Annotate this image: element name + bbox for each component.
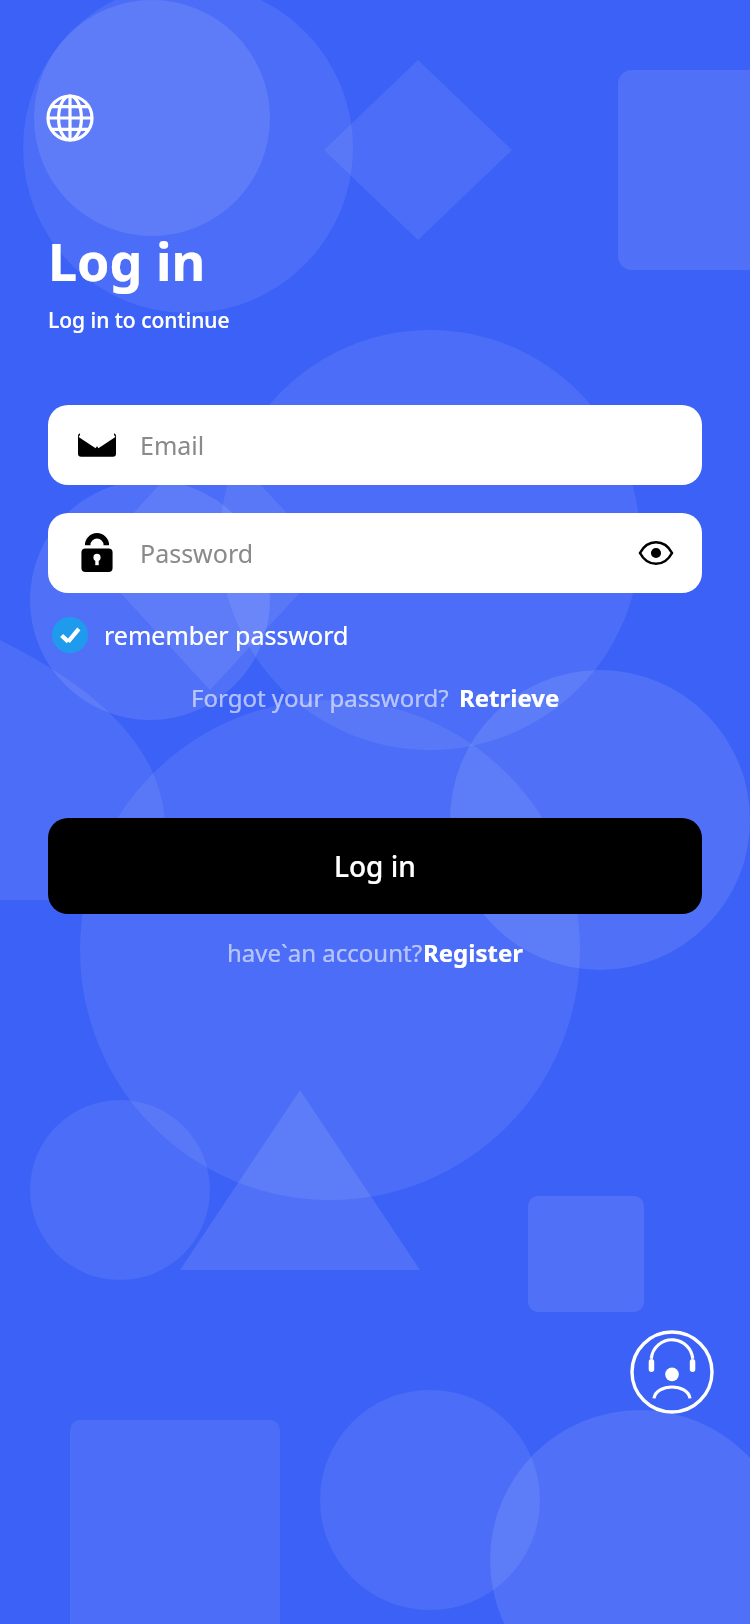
button[interactable]: Retrieve [459, 681, 560, 714]
staticText: Register [423, 936, 523, 969]
button[interactable]: Email [48, 405, 702, 485]
button[interactable]: Password [48, 513, 702, 593]
staticText: Email [140, 428, 205, 462]
staticText: have`an account? [227, 936, 423, 969]
button[interactable]: Register [423, 936, 523, 969]
staticText: Log in [334, 847, 416, 885]
button[interactable]: Language [40, 88, 100, 148]
button[interactable]: Customer support [630, 1330, 714, 1414]
button[interactable]: remember password [48, 611, 353, 659]
button[interactable]: Show password [636, 533, 676, 573]
staticText: Forgot your password? [191, 681, 449, 714]
staticText: Password [140, 536, 636, 570]
staticText: Retrieve [459, 681, 560, 714]
staticText: remember password [104, 618, 349, 652]
button[interactable]: Log in [48, 818, 702, 914]
staticText: Log in to continue [48, 306, 230, 335]
staticText: Log in [48, 225, 206, 296]
